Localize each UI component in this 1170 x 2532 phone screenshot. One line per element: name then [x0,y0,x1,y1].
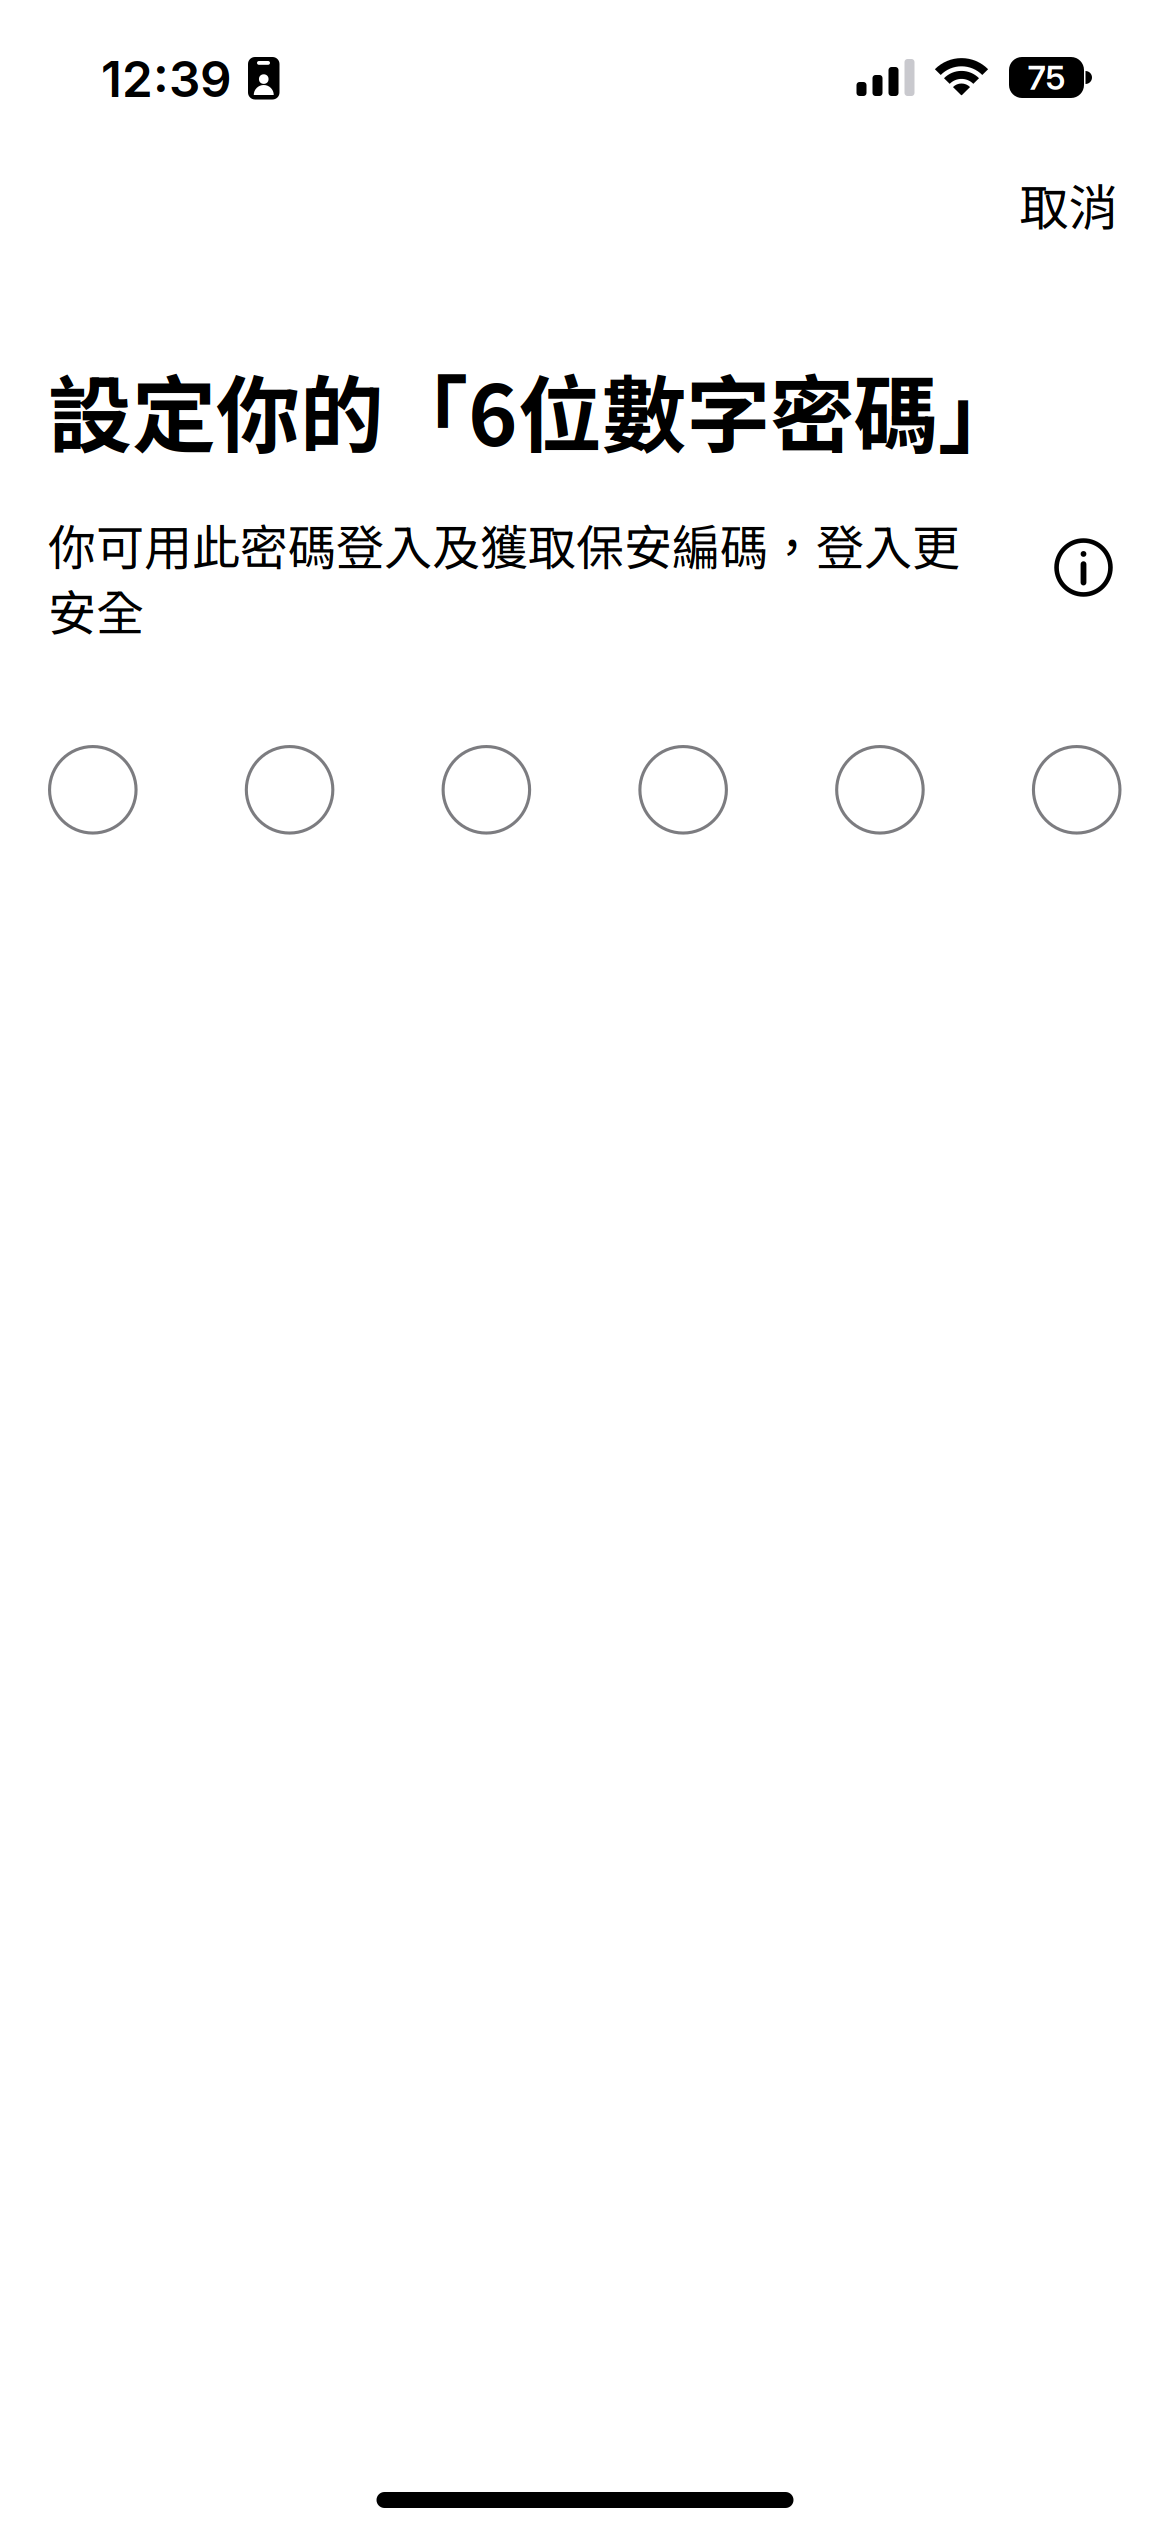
staticText: 取消 [1019,168,1117,240]
staticText: 設定你的「6位數字密碼」 [48,349,1022,470]
button[interactable]: 取消 [927,160,1117,248]
staticText: 你可用此密碼登入及獲取保安編碼，登入更安全 [48,509,960,644]
staticText: 75 [1027,57,1065,98]
staticText: 12:39 [101,49,232,109]
button[interactable]: 6 位數字密碼 [48,745,1121,835]
button[interactable]: 更多資訊 [1037,521,1129,613]
